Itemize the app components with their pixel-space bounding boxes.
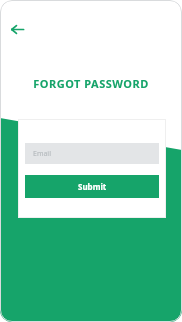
button[interactable]: Email [25,143,159,164]
staticText: FORGOT PASSWORD [0,76,182,91]
button[interactable]: Submit [25,175,159,198]
staticText: Email [33,149,51,159]
button[interactable]: Back [6,18,28,40]
staticText: Submit [78,181,107,192]
